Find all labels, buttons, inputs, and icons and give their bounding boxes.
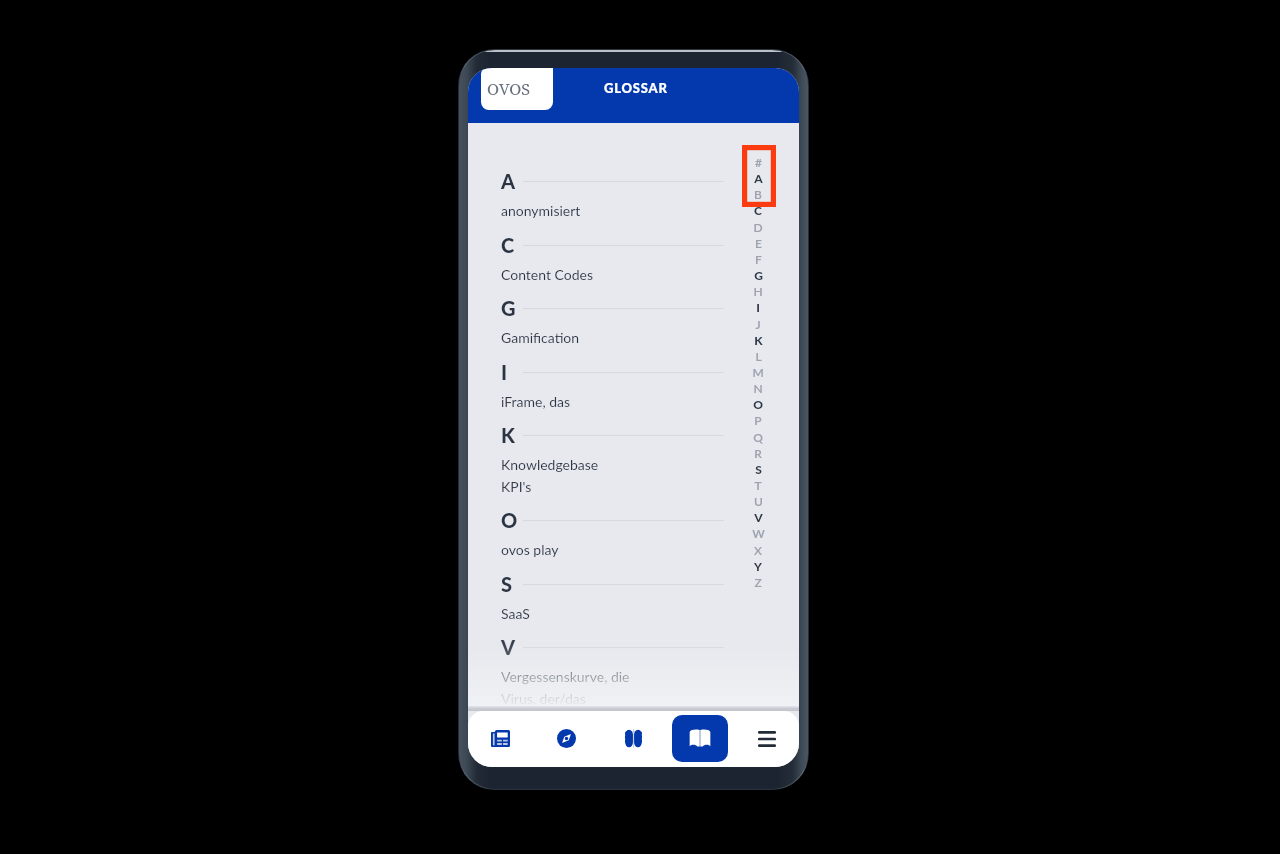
button[interactable]: Content Codes [501,264,726,285]
button[interactable]: S [501,571,726,597]
staticText: W [752,526,765,540]
button[interactable]: Mind [611,715,655,762]
staticText: G [501,296,516,320]
staticText: G [754,268,763,282]
staticText: K [754,333,763,347]
staticText: S [755,462,762,476]
button[interactable]: Glossary [672,715,728,762]
staticText: H [753,284,763,298]
staticText: X [754,543,762,557]
staticText: O [501,508,518,532]
staticText: anonymisiert [501,202,581,219]
staticText: M [752,365,764,379]
button[interactable]: K [501,422,726,448]
staticText: E [755,236,762,250]
staticText: S [501,572,513,596]
staticText: L [755,349,762,363]
button[interactable]: News [478,715,522,762]
staticText: F [755,252,762,266]
button[interactable]: ovos logo [481,68,553,110]
staticText: Y [754,559,762,573]
staticText: R [754,446,762,460]
button[interactable]: anonymisiert [501,200,726,221]
staticText: V [754,510,763,524]
staticText: Q [753,430,763,444]
button[interactable]: Vergessenskurve, die [501,666,726,687]
button[interactable]: Gamification [501,327,726,348]
button[interactable]: I [501,359,726,385]
staticText: I [756,300,760,314]
staticText: C [754,203,762,217]
staticText: J [755,317,761,331]
staticText: Vergessenskurve, die [501,668,630,685]
staticText: A [754,171,763,185]
staticText: P [754,413,762,427]
staticText: KPI's [501,478,532,495]
staticText: T [754,478,762,492]
staticText: A [501,169,516,193]
staticText: iFrame, das [501,393,571,410]
staticText: SaaS [501,605,530,622]
staticText: U [754,494,763,508]
button[interactable]: Menu [745,715,789,762]
button[interactable]: A [501,168,726,194]
staticText: Content Codes [501,266,594,283]
button[interactable]: O [501,507,726,533]
button[interactable]: Explore [544,715,588,762]
staticText: Virus, der/das [501,690,586,707]
staticText: K [501,423,515,447]
staticText: N [753,381,763,395]
staticText: D [753,220,763,234]
staticText: O [753,397,763,411]
button[interactable]: SaaS [501,603,726,624]
button[interactable]: Alphabet index [742,154,774,602]
staticText: Gamification [501,329,579,346]
button[interactable]: C [501,232,726,258]
button[interactable]: V [501,634,726,660]
staticText: I [501,360,508,384]
staticText: GLOSSAR [604,80,668,96]
button[interactable]: Knowledgebase [501,454,726,475]
staticText: B [754,187,762,201]
button[interactable]: iFrame, das [501,391,726,412]
staticText: OVOS [487,77,531,100]
staticText: ovos play [501,541,559,558]
button[interactable]: G [501,295,726,321]
staticText: Knowledgebase [501,456,599,473]
button[interactable]: KPI's [501,476,726,497]
staticText: V [501,635,516,659]
button[interactable]: Virus, der/das [501,688,726,709]
staticText: C [501,233,515,257]
staticText: # [755,155,762,169]
staticText: Z [754,575,762,589]
button[interactable]: ovos play [501,539,726,560]
